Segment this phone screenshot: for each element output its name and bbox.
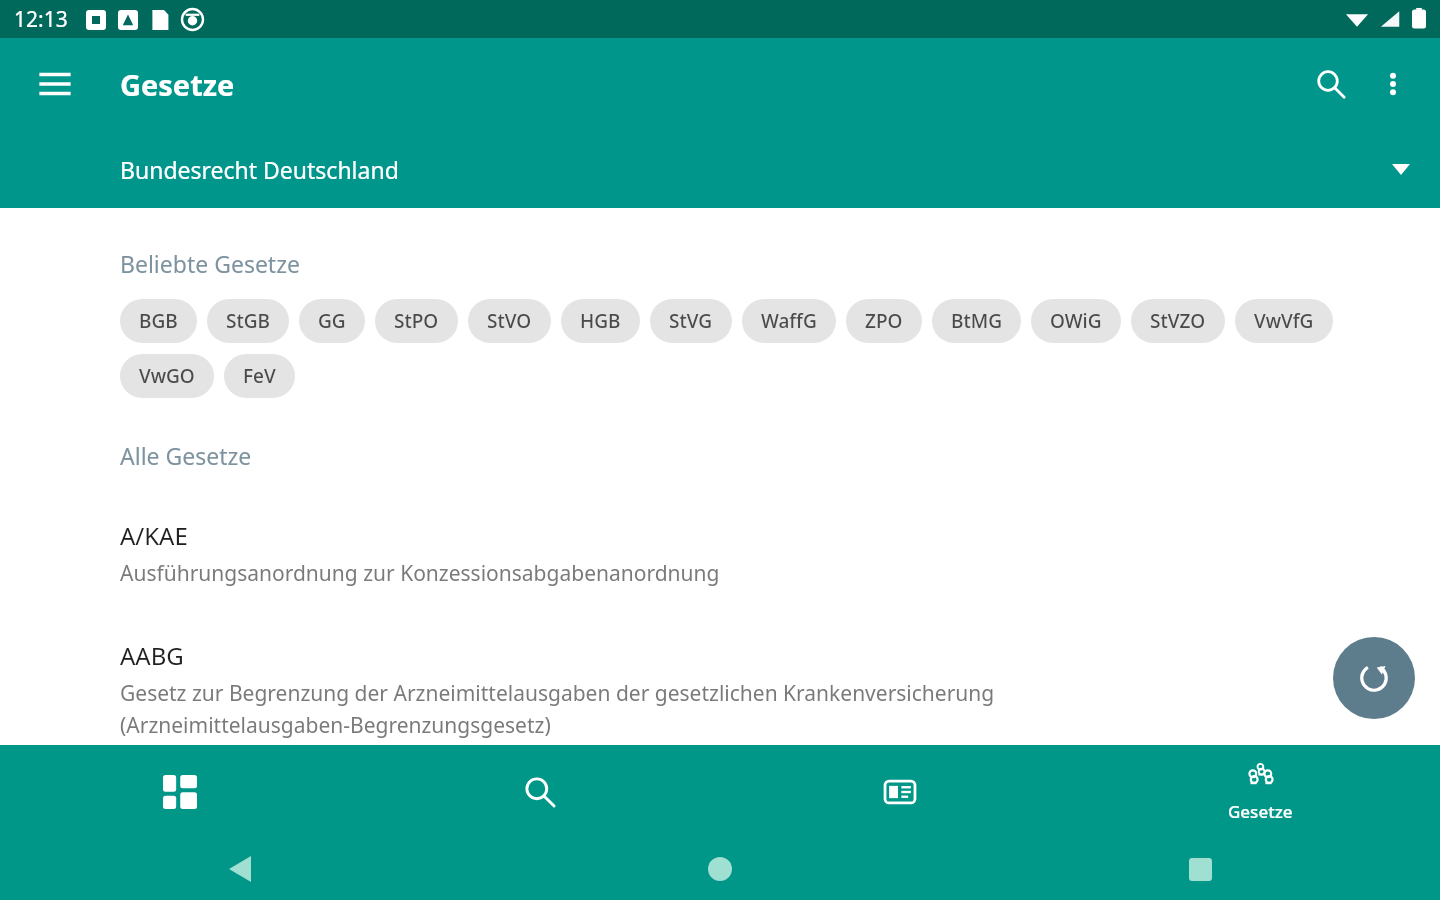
button[interactable]: Aktualisieren [1333,637,1415,719]
staticText: 12:13 [14,5,68,34]
button[interactable]: AABG [0,639,1440,743]
button[interactable]: Karten [720,745,1080,838]
staticText: Gesetz zur Begrenzung der Arzneimittelau… [120,679,995,708]
button[interactable]: Übersicht [0,745,360,838]
button[interactable]: StVO [468,299,551,343]
staticText: Gesetze [120,65,235,104]
button[interactable]: Weitere Optionen [1362,53,1424,115]
staticText: GG [318,308,346,334]
staticText: (Arzneimittelausgaben-Begrenzungsgesetz) [120,711,551,740]
button[interactable]: StPO [375,299,458,343]
button[interactable]: Startbildschirm [480,838,960,900]
staticText: AABG [120,639,184,672]
staticText: BGB [139,308,178,334]
staticText: StPO [394,308,439,334]
button[interactable]: VwVfG [1235,299,1333,343]
button[interactable]: Menü öffnen [24,53,86,115]
staticText: VwGO [139,363,195,389]
staticText: FeV [243,363,276,389]
staticText: WaffG [761,308,817,334]
staticText: VwVfG [1254,308,1314,334]
button[interactable]: VwGO [120,354,214,398]
staticText: StVZO [1150,308,1206,334]
button[interactable]: HGB [561,299,640,343]
staticText: A/KAE [120,519,188,552]
button[interactable]: ZPO [846,299,922,343]
staticText: Beliebte Gesetze [120,248,300,279]
button[interactable]: Zurück [0,838,480,900]
staticText: HGB [580,308,621,334]
button[interactable]: GG [299,299,365,343]
staticText: Alle Gesetze [120,440,252,471]
staticText: StGB [226,308,270,334]
button[interactable]: WaffG [742,299,836,343]
staticText: StVO [487,308,532,334]
button[interactable]: A/KAE [0,519,1440,591]
button[interactable]: Gesetze [1080,745,1440,838]
staticText: Bundesrecht Deutschland [120,154,399,185]
staticText: OWiG [1050,308,1102,334]
button[interactable]: StVZO [1131,299,1225,343]
button[interactable]: Bundesrecht Deutschland [0,130,1440,208]
button[interactable]: StVG [650,299,732,343]
button[interactable]: StGB [207,299,289,343]
button[interactable]: Suchen [360,745,720,838]
button[interactable]: OWiG [1031,299,1121,343]
staticText: BtMG [951,308,1002,334]
staticText: Gesetze [1228,800,1293,823]
button[interactable]: Übersicht [960,838,1440,900]
button[interactable]: Suchen [1300,53,1362,115]
staticText: Ausführungsanordnung zur Konzessionsabga… [120,559,720,588]
button[interactable]: FeV [224,354,295,398]
staticText: StVG [669,308,713,334]
staticText: ZPO [865,308,903,334]
button[interactable]: BtMG [932,299,1021,343]
button[interactable]: BGB [120,299,197,343]
